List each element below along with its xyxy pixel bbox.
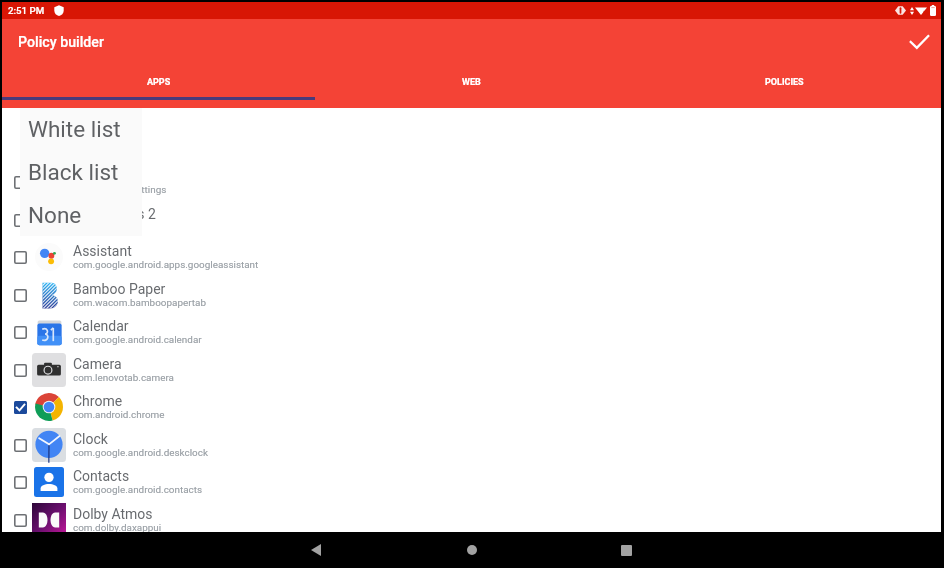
- staticText: com.wacom.bamboopapertab: [73, 297, 206, 309]
- staticText: com.android.chrome: [73, 409, 165, 421]
- staticText: 2:51 PM: [8, 5, 45, 16]
- button[interactable]: White list: [20, 108, 142, 150]
- staticText: com.dolby.daxappui: [73, 522, 162, 534]
- button[interactable]: Contacts: [2, 463, 941, 501]
- staticText: Bamboo Paper: [73, 281, 166, 297]
- button[interactable]: WEB: [315, 65, 628, 108]
- staticText: com.rovio.baba: [73, 222, 142, 234]
- button[interactable]: Save: [901, 24, 937, 60]
- staticText: Policy builder: [18, 34, 104, 51]
- button[interactable]: Clock: [2, 426, 941, 464]
- button[interactable]: Home: [448, 532, 496, 568]
- button[interactable]: POLICIES: [628, 65, 941, 108]
- button[interactable]: Bamboo Paper: [2, 276, 941, 314]
- staticText: None: [28, 202, 82, 228]
- staticText: Camera: [73, 356, 122, 372]
- staticText: com.google.android.apps.googleassistant: [73, 259, 259, 271]
- button[interactable]: Black list: [20, 150, 142, 193]
- button[interactable]: Recent apps: [602, 532, 650, 568]
- staticText: Black list: [28, 159, 119, 185]
- button[interactable]: Chrome: [2, 388, 941, 426]
- button[interactable]: Assistant: [2, 238, 941, 276]
- staticText: Angry Birds 2: [73, 206, 156, 222]
- staticText: POLICIES: [765, 77, 804, 88]
- staticText: WEB: [462, 77, 481, 88]
- staticText: com.google.android.deskclock: [73, 447, 208, 459]
- staticText: com.google.android.calendar: [73, 334, 202, 346]
- staticText: Dolby Atmos: [73, 506, 153, 522]
- staticText: com.google.android.contacts: [73, 484, 203, 496]
- button[interactable]: APPS: [2, 65, 315, 108]
- staticText: Chrome: [73, 393, 123, 409]
- button[interactable]: Calendar: [2, 313, 941, 351]
- staticText: APPS: [147, 77, 171, 88]
- button[interactable]: Angry Birds 2: [2, 201, 941, 239]
- staticText: Clock: [73, 431, 108, 447]
- button[interactable]: Camera: [2, 351, 941, 389]
- button[interactable]: Back: [292, 532, 340, 568]
- staticText: Contacts: [73, 468, 130, 484]
- staticText: Settings: [73, 168, 125, 184]
- staticText: Calendar: [73, 318, 129, 334]
- button[interactable]: Dolby Atmos: [2, 501, 941, 539]
- staticText: com.android.settings: [73, 184, 167, 196]
- button[interactable]: Settings: [2, 163, 941, 201]
- button[interactable]: None: [20, 193, 142, 236]
- staticText: Assistant: [73, 243, 132, 259]
- staticText: White list: [28, 116, 121, 142]
- staticText: com.lenovotab.camera: [73, 372, 174, 384]
